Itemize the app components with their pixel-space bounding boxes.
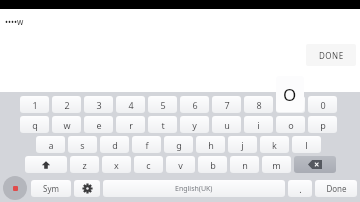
button[interactable]: o	[276, 116, 305, 133]
button[interactable]: 8	[244, 96, 273, 113]
button[interactable]: 3	[84, 96, 113, 113]
button[interactable]: j	[228, 136, 257, 153]
button[interactable]: DONE	[306, 44, 356, 66]
button[interactable]: z	[70, 156, 99, 173]
button[interactable]: h	[196, 136, 225, 153]
staticText: q	[32, 119, 38, 131]
staticText: 3	[96, 99, 102, 111]
staticText: v	[178, 159, 183, 171]
button[interactable]: y	[180, 116, 209, 133]
button[interactable]: c	[134, 156, 163, 173]
button[interactable]: i	[244, 116, 273, 133]
staticText: z	[82, 159, 87, 171]
button[interactable]: s	[68, 136, 97, 153]
button[interactable]: 0	[308, 96, 337, 113]
button[interactable]: 7	[212, 96, 241, 113]
staticText: y	[192, 119, 197, 131]
button[interactable]: 6	[180, 96, 209, 113]
button[interactable]: d	[100, 136, 129, 153]
staticText: b	[210, 159, 216, 171]
button[interactable]: n	[230, 156, 259, 173]
button[interactable]: e	[84, 116, 113, 133]
button[interactable]: g	[164, 136, 193, 153]
staticText: 6	[192, 99, 198, 111]
button[interactable]: 1	[20, 96, 49, 113]
button[interactable]: a	[36, 136, 65, 153]
button[interactable]: b	[198, 156, 227, 173]
staticText: x	[114, 159, 119, 171]
button[interactable]: Settings	[74, 180, 100, 197]
button[interactable]: 5	[148, 96, 177, 113]
staticText: m	[272, 159, 281, 171]
staticText: 5	[160, 99, 166, 111]
staticText: English(UK)	[175, 184, 213, 194]
staticText: k	[272, 139, 277, 151]
staticText: o	[288, 119, 294, 131]
button[interactable]: l	[292, 136, 321, 153]
button[interactable]: k	[260, 136, 289, 153]
button[interactable]: u	[212, 116, 241, 133]
button[interactable]: Voice input	[3, 176, 27, 200]
staticText: e	[96, 119, 102, 131]
staticText: O	[283, 83, 297, 106]
staticText: i	[257, 119, 260, 131]
staticText: f	[145, 139, 149, 151]
button[interactable]: q	[20, 116, 49, 133]
staticText: 9	[288, 99, 294, 111]
staticText: u	[224, 119, 230, 131]
button[interactable]: .	[288, 180, 312, 197]
staticText: 8	[256, 99, 262, 111]
staticText: 0	[320, 99, 326, 111]
button[interactable]: Shift	[25, 156, 67, 173]
staticText: n	[242, 159, 248, 171]
button[interactable]: w	[52, 116, 81, 133]
button[interactable]: English(UK)	[103, 180, 285, 197]
staticText: p	[320, 119, 326, 131]
staticText: ••••w	[5, 16, 24, 27]
button[interactable]: x	[102, 156, 131, 173]
button[interactable]: 4	[116, 96, 145, 113]
staticText: g	[176, 139, 182, 151]
button[interactable]: 9	[276, 96, 305, 113]
button[interactable]: t	[148, 116, 177, 133]
staticText: 7	[224, 99, 230, 111]
staticText: Sym	[43, 183, 59, 194]
button[interactable]: Sym	[31, 180, 71, 197]
staticText: .	[299, 183, 302, 195]
staticText: 2	[64, 99, 70, 111]
button[interactable]: 2	[52, 96, 81, 113]
staticText: d	[112, 139, 118, 151]
button[interactable]: Done	[315, 180, 357, 197]
button[interactable]: v	[166, 156, 195, 173]
staticText: h	[208, 139, 214, 151]
staticText: 4	[128, 99, 134, 111]
staticText: r	[129, 119, 133, 131]
button[interactable]: p	[308, 116, 337, 133]
staticText: t	[161, 119, 165, 131]
staticText: DONE	[319, 50, 344, 61]
staticText: c	[146, 159, 151, 171]
button[interactable]: Backspace	[294, 156, 336, 173]
staticText: j	[241, 139, 244, 151]
staticText: l	[305, 139, 308, 151]
staticText: s	[80, 139, 85, 151]
staticText: Done	[326, 183, 347, 194]
staticText: 1	[32, 99, 38, 111]
button[interactable]: m	[262, 156, 291, 173]
button[interactable]: r	[116, 116, 145, 133]
staticText: a	[48, 139, 54, 151]
button[interactable]: f	[132, 136, 161, 153]
staticText: w	[63, 119, 71, 131]
